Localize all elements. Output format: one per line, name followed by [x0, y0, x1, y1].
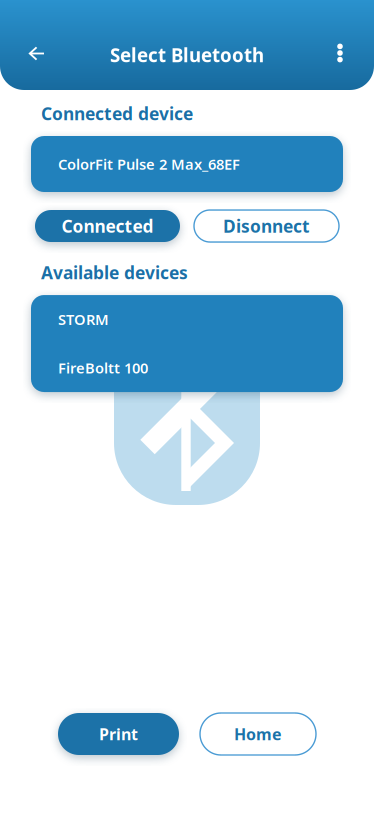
staticText: Home — [234, 723, 282, 745]
staticText: Connected device — [41, 102, 193, 125]
staticText: STORM — [58, 309, 109, 329]
button[interactable]: Connected — [35, 210, 180, 242]
button[interactable]: FireBoltt 100 — [31, 343, 343, 392]
staticText: Disonnect — [223, 214, 310, 237]
button[interactable]: Disonnect — [194, 210, 339, 242]
button[interactable]: Home — [200, 713, 316, 755]
staticText: Available devices — [41, 261, 188, 284]
staticText: ColorFit Pulse 2 Max_68EF — [58, 154, 240, 174]
button[interactable]: Print — [58, 713, 179, 755]
staticText: Connected — [61, 214, 153, 237]
staticText: Select Bluetooth — [110, 43, 264, 67]
button[interactable]: Back — [0, 13, 61, 77]
staticText: Print — [99, 723, 138, 745]
button[interactable]: More options — [321, 12, 374, 78]
staticText: FireBoltt 100 — [58, 358, 148, 377]
button[interactable]: STORM — [31, 295, 343, 343]
button[interactable]: ColorFit Pulse 2 Max_68EF — [31, 136, 343, 192]
